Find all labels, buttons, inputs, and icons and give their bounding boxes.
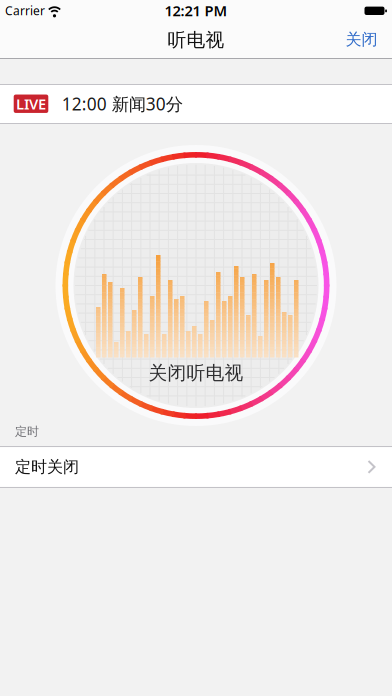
staticText: LIVE [16,94,46,113]
staticText: 12:00 新闻30分 [62,92,183,115]
staticText: 关闭 [345,30,377,49]
button[interactable]: 定时关闭 [0,447,392,487]
staticText: 定时关闭 [15,457,79,477]
button[interactable]: 关闭 [345,30,377,49]
button[interactable]: 关闭听电视 [55,144,337,426]
staticText: 12:21 PM [164,1,227,20]
staticText: Carrier [5,2,45,18]
staticText: 听电视 [167,28,224,51]
staticText: 关闭听电视 [148,361,243,384]
staticText: 定时 [15,424,39,439]
